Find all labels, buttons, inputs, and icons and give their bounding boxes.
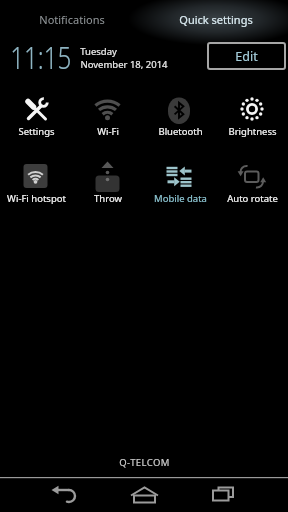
button[interactable]: Edit	[207, 42, 286, 70]
button[interactable]	[104, 478, 184, 512]
staticText: Auto rotate	[227, 192, 278, 205]
staticText: 11:15	[10, 36, 72, 78]
button[interactable]	[24, 478, 104, 512]
staticText: Throw	[94, 192, 122, 205]
staticText: Quick settings	[179, 12, 253, 27]
button[interactable]	[216, 92, 288, 142]
staticText: Wi-Fi hotspot	[7, 192, 66, 205]
button[interactable]	[72, 158, 144, 208]
button[interactable]	[0, 158, 72, 208]
staticText: Q-TELCOM	[119, 456, 170, 469]
staticText: Brightness	[228, 125, 277, 138]
staticText: Wi-Fi	[97, 125, 119, 138]
staticText: Edit	[235, 48, 258, 65]
button[interactable]	[72, 92, 144, 142]
staticText: Settings	[18, 125, 55, 138]
button[interactable]	[184, 478, 264, 512]
button[interactable]	[144, 92, 216, 142]
staticText: Mobile data	[154, 192, 207, 205]
staticText: Notifications	[39, 12, 105, 27]
staticText: November 18, 2014	[80, 58, 168, 71]
staticText: Tuesday	[80, 45, 117, 58]
button[interactable]	[216, 158, 288, 208]
staticText: Bluetooth	[158, 125, 203, 138]
button[interactable]	[0, 92, 72, 142]
button[interactable]: Quick settings	[144, 4, 288, 34]
button[interactable]: Notifications	[0, 4, 144, 34]
button[interactable]	[144, 158, 216, 208]
